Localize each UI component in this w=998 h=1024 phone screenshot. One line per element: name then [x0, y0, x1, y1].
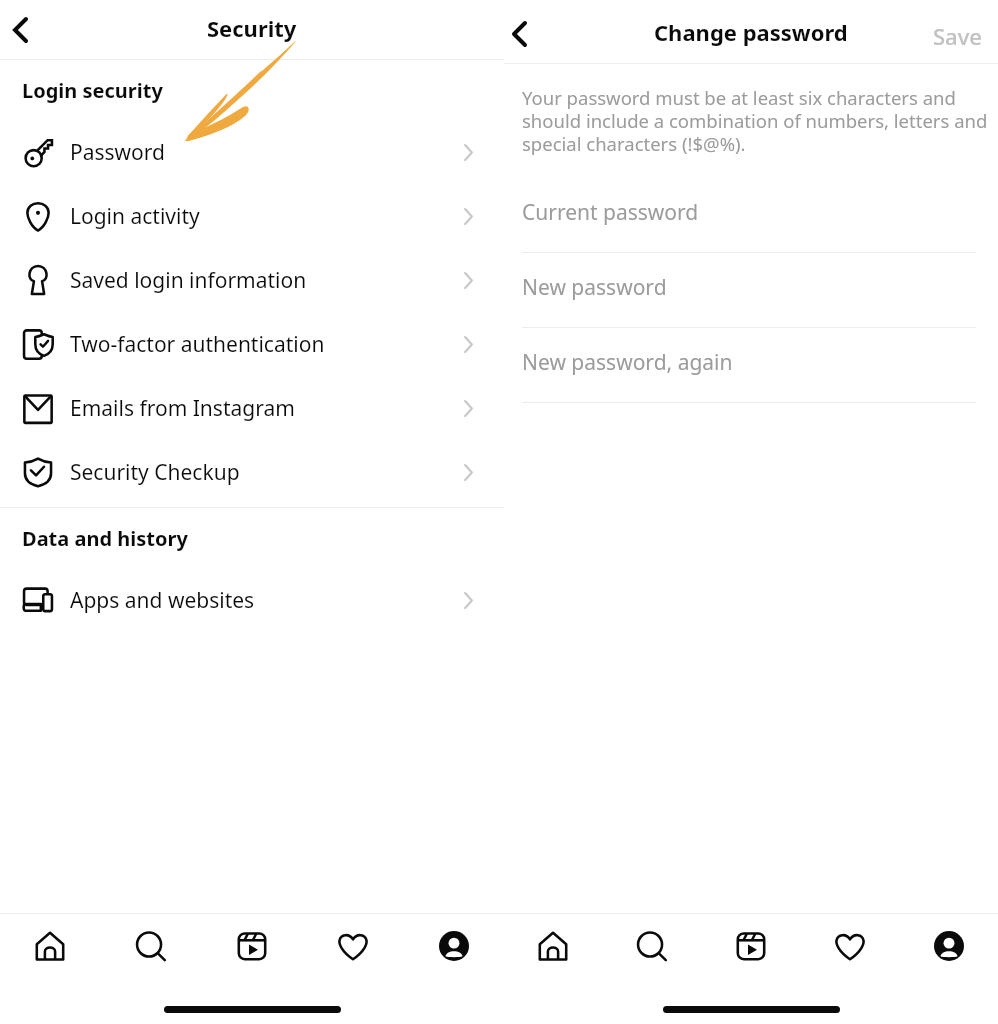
staticText: Your password must be at least six chara…: [522, 85, 998, 156]
button[interactable]: Activity: [302, 914, 403, 978]
button[interactable]: New password, again: [504, 328, 998, 403]
staticText: Two-factor authentication: [70, 330, 325, 359]
button[interactable]: Activity: [800, 914, 899, 978]
button[interactable]: New password: [504, 253, 998, 328]
button[interactable]: Home: [504, 914, 602, 978]
staticText: Save: [933, 21, 982, 51]
button[interactable]: Two-factor authentication: [0, 312, 504, 376]
staticText: Data and history: [22, 525, 188, 552]
button[interactable]: Apps and websites: [0, 568, 504, 632]
staticText: Emails from Instagram: [70, 394, 295, 423]
staticText: New password: [522, 273, 667, 302]
button[interactable]: Reels: [201, 914, 302, 978]
button[interactable]: Save: [919, 11, 998, 57]
button[interactable]: Emails from Instagram: [0, 376, 504, 440]
staticText: Current password: [522, 198, 699, 227]
button[interactable]: Login activity: [0, 184, 504, 248]
button[interactable]: Password: [0, 120, 504, 184]
button[interactable]: Current password: [504, 178, 998, 253]
staticText: Saved login information: [70, 266, 307, 295]
button[interactable]: Security Checkup: [0, 440, 504, 504]
staticText: Login activity: [70, 202, 200, 231]
staticText: Change password: [654, 17, 848, 47]
staticText: Login security: [22, 77, 163, 104]
staticText: Password: [70, 138, 165, 167]
button[interactable]: Search: [100, 914, 201, 978]
staticText: New password, again: [522, 348, 733, 377]
button[interactable]: Search: [602, 914, 701, 978]
button[interactable]: Back: [504, 10, 552, 58]
staticText: Security Checkup: [70, 458, 240, 487]
button[interactable]: Saved login information: [0, 248, 504, 312]
button[interactable]: Back: [0, 6, 48, 54]
staticText: Apps and websites: [70, 586, 255, 615]
staticText: Security: [207, 13, 297, 43]
button[interactable]: Reels: [701, 914, 800, 978]
button[interactable]: Profile: [403, 914, 504, 978]
button[interactable]: Home: [0, 914, 100, 978]
button[interactable]: Profile: [899, 914, 998, 978]
